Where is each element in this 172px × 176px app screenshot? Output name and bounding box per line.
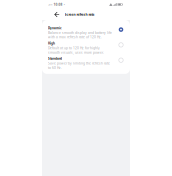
staticText: ▾ bbox=[64, 3, 65, 6]
staticText: SIM bbox=[48, 3, 52, 6]
button[interactable]: Dynamic bbox=[42, 25, 130, 40]
staticText: High bbox=[48, 41, 55, 45]
staticText: Default at up to 120 Hz for highly smoot… bbox=[48, 46, 104, 55]
staticText: Screen refresh rate bbox=[64, 12, 94, 17]
button[interactable]: High bbox=[42, 40, 130, 56]
staticText: Balance smooth display and battery life … bbox=[48, 31, 112, 39]
staticText: 10:08 bbox=[53, 2, 62, 7]
staticText: Save power by limiting the refresh rate … bbox=[48, 61, 110, 70]
button[interactable]: Standard bbox=[42, 56, 130, 71]
staticText: Dynamic bbox=[48, 26, 62, 30]
staticText: Standard bbox=[48, 57, 62, 61]
button[interactable]: Back bbox=[52, 10, 61, 19]
